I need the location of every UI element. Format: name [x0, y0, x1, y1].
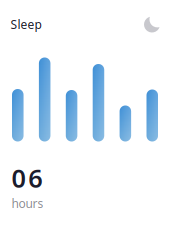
- staticText: hours: [11, 195, 43, 211]
- staticText: Sleep: [10, 16, 41, 32]
- button[interactable]: Sleep mode: [144, 16, 160, 33]
- staticText: 06: [11, 161, 42, 195]
